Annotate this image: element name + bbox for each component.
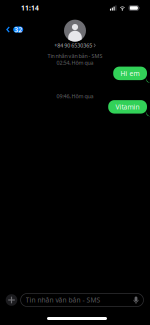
staticText: Tin nhắn văn bản - SMS: [47, 52, 102, 60]
button[interactable]: Back to conversations: [0, 18, 31, 36]
staticText: 11:14: [21, 4, 39, 12]
button[interactable]: Tin nhắn văn bản - SMS: [21, 293, 143, 306]
button[interactable]: Add attachment: [0, 293, 21, 306]
staticText: 32: [14, 25, 22, 34]
staticText: +84 90 6530365: [54, 42, 92, 49]
staticText: Tin nhắn văn bản - SMS: [26, 296, 101, 304]
staticText: Hi em: [121, 69, 140, 78]
staticText: 02:54, Hôm qua: [56, 59, 93, 66]
staticText: 09:46, Hôm qua: [56, 93, 93, 100]
staticText: Vitamin: [116, 102, 140, 111]
